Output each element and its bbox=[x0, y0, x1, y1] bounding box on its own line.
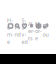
button[interactable]: Home bbox=[7, 23, 14, 33]
button[interactable]: Find bbox=[14, 23, 21, 33]
button[interactable]: Alerts bbox=[28, 23, 35, 33]
button[interactable]: You bbox=[42, 23, 49, 33]
staticText: Find bbox=[14, 24, 20, 38]
staticText: Saved bbox=[21, 17, 27, 45]
button[interactable]: Saved bbox=[21, 23, 28, 33]
button[interactable]: More bbox=[35, 23, 42, 33]
staticText: You bbox=[42, 24, 48, 38]
staticText: More bbox=[35, 20, 42, 42]
staticText: Home bbox=[7, 17, 14, 45]
staticText: Alerts bbox=[28, 20, 35, 42]
